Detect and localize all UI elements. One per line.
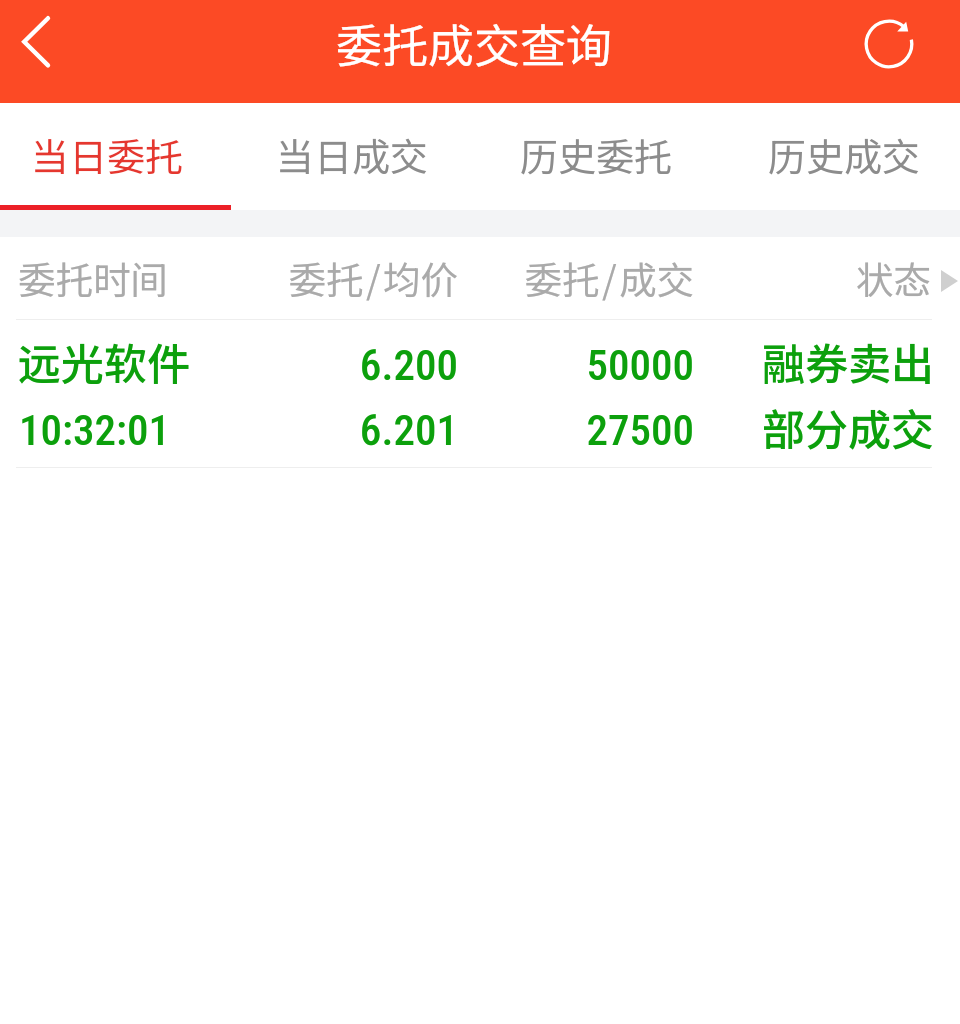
button[interactable]: 当日委托 [0, 103, 240, 210]
staticText: 27500 [458, 405, 694, 455]
staticText: 历史成交 [768, 127, 921, 182]
staticText: 10:32:01 [19, 405, 170, 455]
staticText: 委托 / 均价 [220, 250, 458, 304]
staticText: 委托成交查询 [336, 10, 612, 77]
staticText: 部分成交 [0, 396, 934, 458]
button[interactable]: 远光软件 [0, 319, 960, 468]
staticText: 状态 [856, 250, 931, 304]
staticText: 当日委托 [31, 127, 184, 182]
button[interactable]: Back [0, 0, 78, 103]
staticText: 委托 / 成交 [458, 250, 694, 304]
staticText: 委托时间 [18, 250, 220, 304]
staticText: 50000 [458, 340, 694, 390]
staticText: 当日成交 [276, 127, 429, 182]
staticText: 历史委托 [520, 127, 673, 182]
button[interactable]: 当日成交 [240, 103, 480, 210]
staticText: 融券卖出 [0, 330, 934, 392]
staticText: 远光软件 [18, 330, 190, 392]
staticText: 6.200 [220, 340, 458, 390]
button[interactable]: 历史成交 [720, 103, 960, 210]
button[interactable]: 历史委托 [480, 103, 720, 210]
button[interactable]: Refresh [856, 0, 960, 103]
staticText: 6.201 [220, 405, 458, 455]
button[interactable]: 状态 [830, 237, 960, 319]
